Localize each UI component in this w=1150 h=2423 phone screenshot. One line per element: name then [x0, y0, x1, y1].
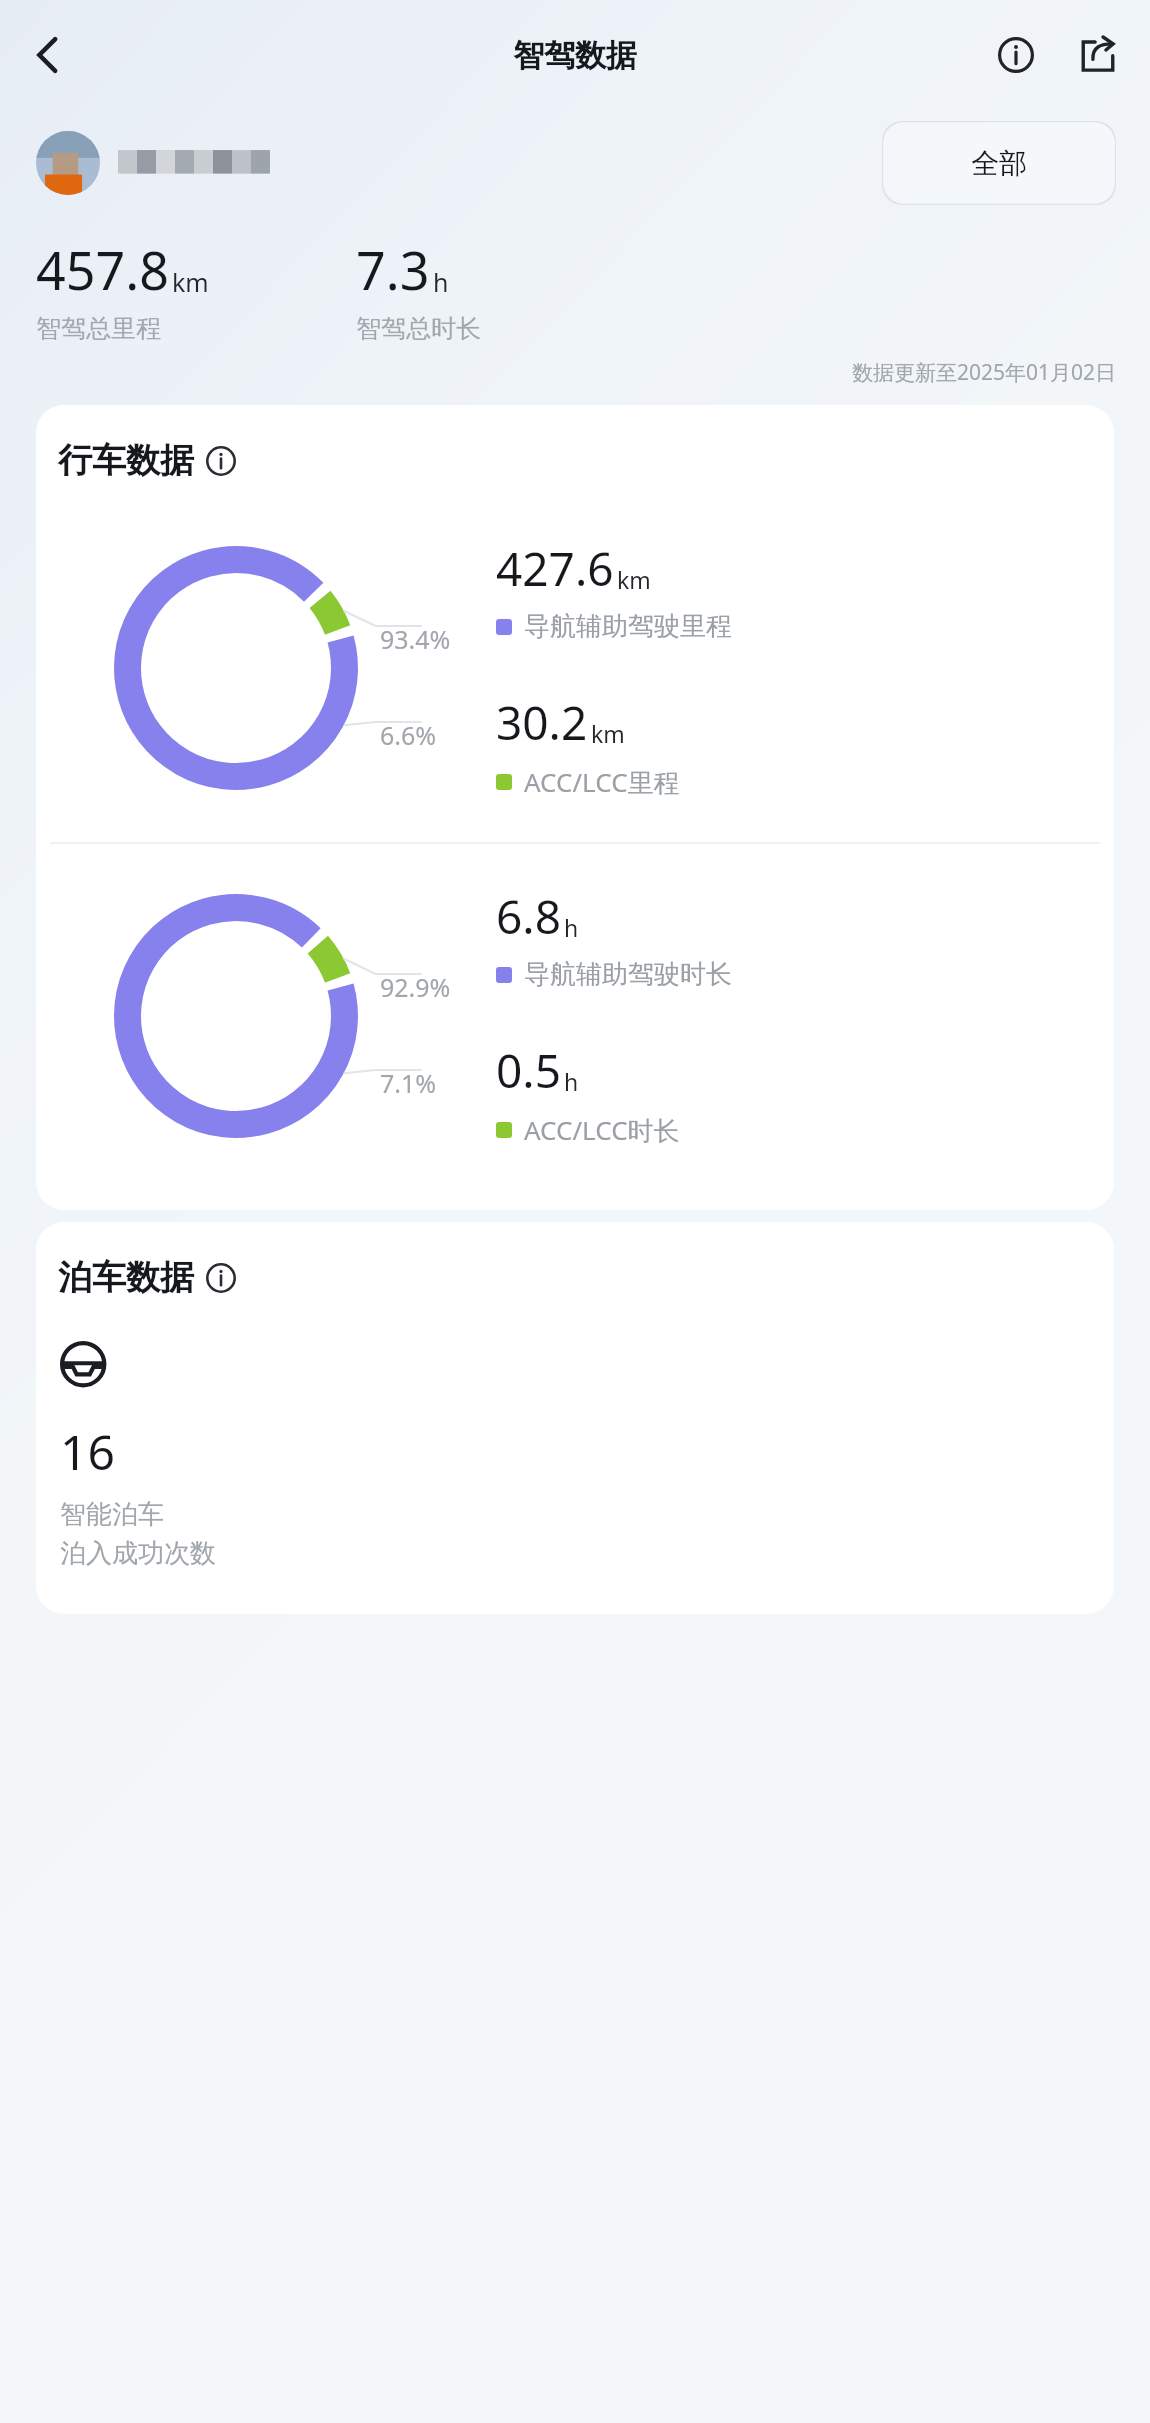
staticText: 16 [60, 1419, 115, 1484]
staticText: h [564, 912, 579, 943]
button[interactable]: 行车数据 [58, 439, 236, 482]
button[interactable]: Profile [36, 131, 100, 195]
button[interactable]: 全部 [882, 121, 1116, 205]
staticText: 30.2 [496, 691, 588, 754]
staticText: 7.1% [380, 1066, 437, 1100]
staticText: km [591, 718, 625, 749]
staticText: km [172, 265, 209, 299]
staticText: 泊车数据 [58, 1256, 194, 1299]
staticText: 数据更新至2025年01月02日 [0, 358, 1116, 387]
staticText: km [617, 564, 651, 595]
staticText: 6.6% [380, 718, 437, 752]
staticText: 行车数据 [58, 439, 194, 482]
staticText: 93.4% [380, 622, 451, 656]
staticText: h [433, 265, 449, 299]
staticText: 智驾总里程 [36, 313, 161, 344]
staticText: h [564, 1066, 579, 1097]
staticText: ACC/LCC时长 [524, 1112, 680, 1148]
staticText: 0.5 [496, 1039, 561, 1102]
button[interactable]: Back [14, 21, 82, 89]
button[interactable]: Info [984, 23, 1048, 87]
staticText: 7.3 [356, 234, 430, 305]
staticText: 6.8 [496, 885, 561, 948]
staticText: 智驾数据 [513, 36, 637, 75]
button[interactable]: Share [1066, 23, 1130, 87]
staticText: 泊入成功次数 [60, 1537, 216, 1570]
staticText: 427.6 [496, 537, 614, 600]
staticText: 457.8 [36, 234, 169, 305]
other: Info [206, 1263, 236, 1293]
staticText: 92.9% [380, 970, 451, 1004]
staticText: 导航辅助驾驶时长 [524, 958, 732, 991]
staticText: 智能泊车 [60, 1498, 164, 1531]
staticText: 全部 [971, 146, 1027, 181]
button[interactable]: 泊车数据 [58, 1256, 236, 1299]
staticText: 导航辅助驾驶里程 [524, 610, 732, 643]
staticText: ACC/LCC里程 [524, 764, 680, 800]
staticText: 智驾总时长 [356, 313, 481, 344]
other: Info [206, 446, 236, 476]
